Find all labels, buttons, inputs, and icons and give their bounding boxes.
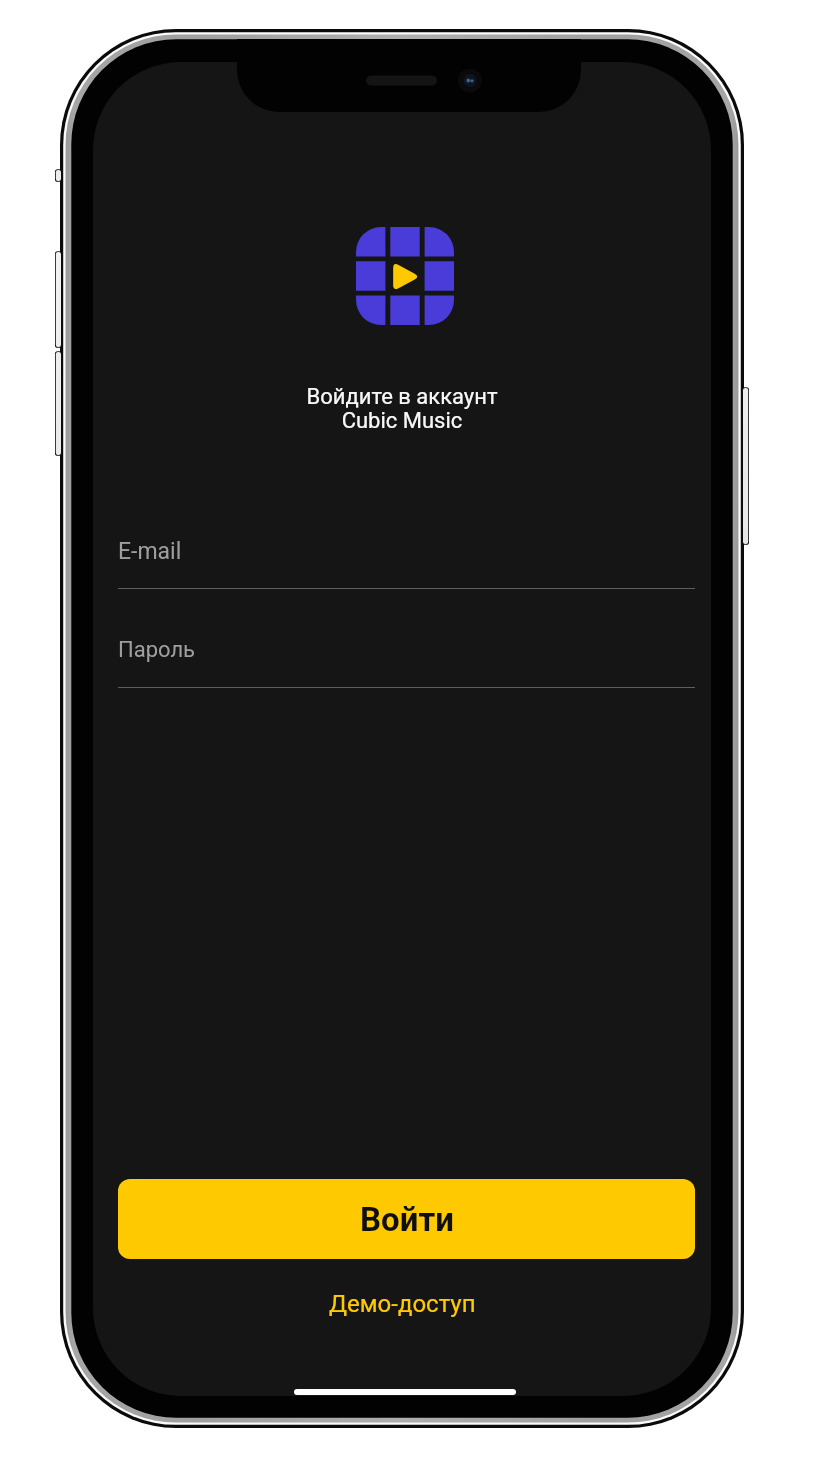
staticText: Войти <box>360 1200 454 1239</box>
button[interactable]: Демо-доступ <box>309 1282 496 1326</box>
staticText: Демо-доступ <box>329 1290 476 1318</box>
button[interactable]: E-mail <box>118 534 695 589</box>
button[interactable]: Пароль <box>118 633 695 688</box>
staticText: Войдите в аккаунт Cubic Music <box>306 384 498 433</box>
other: Cubic Music logo <box>356 227 454 325</box>
staticText: Пароль <box>118 637 196 663</box>
staticText: E-mail <box>118 538 182 565</box>
button[interactable]: Войти <box>118 1179 695 1259</box>
